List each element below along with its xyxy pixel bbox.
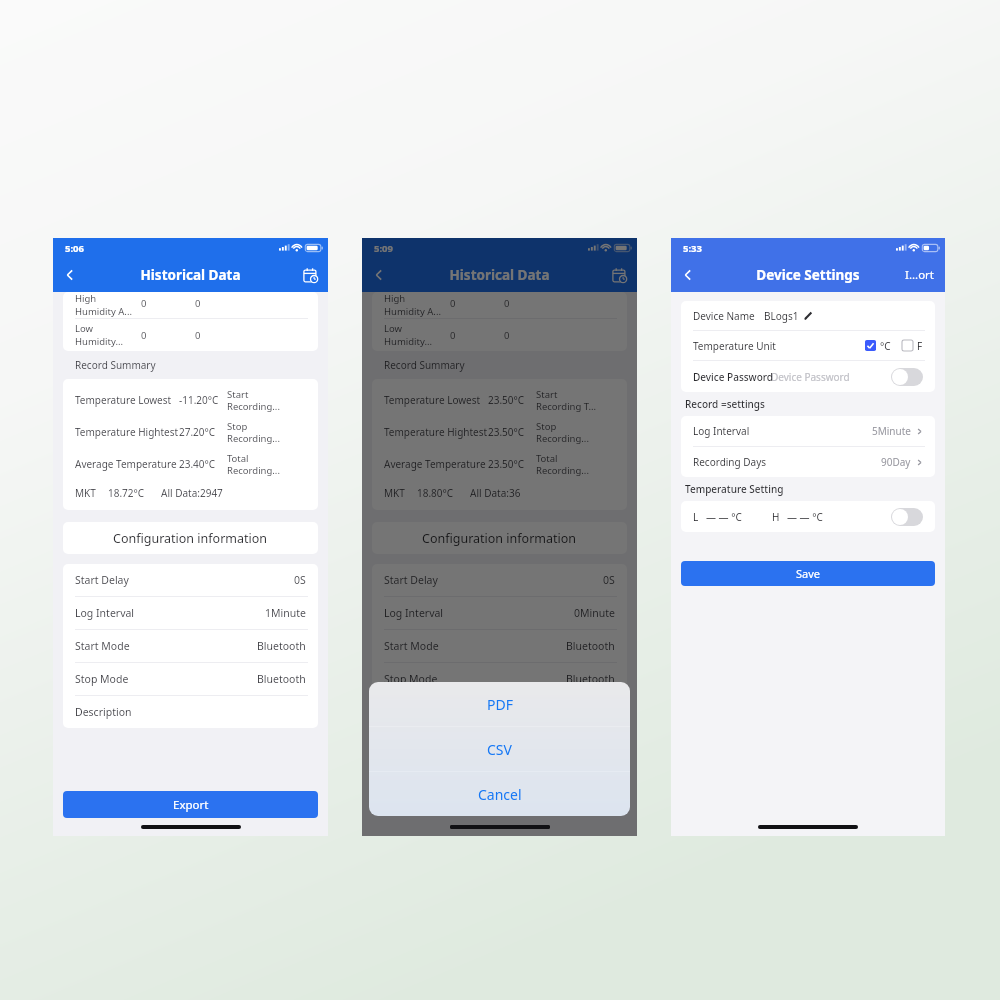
button[interactable]: Stop Mode	[63, 663, 318, 695]
staticText: 0	[450, 329, 456, 342]
staticText: 23.50°C	[488, 425, 536, 439]
staticText: Low	[384, 322, 403, 335]
button[interactable]: Cancel	[369, 772, 630, 816]
staticText: F	[917, 339, 923, 353]
staticText: Device Password	[771, 370, 850, 384]
staticText: Start Delay	[384, 573, 438, 587]
staticText: Low	[75, 322, 94, 335]
staticText: °C	[880, 339, 891, 353]
staticText: Bluetooth	[257, 672, 306, 686]
staticText: 0S	[603, 573, 615, 587]
staticText: All Data:2947	[161, 486, 223, 500]
staticText: Start Recording...	[227, 388, 280, 412]
button[interactable]: Start Delay	[372, 564, 627, 596]
staticText: Average Temperature	[384, 457, 488, 471]
staticText: 0Minute	[574, 606, 615, 620]
staticText: Cancel	[478, 785, 522, 804]
staticText: High	[75, 292, 97, 305]
staticText: Stop Mode	[75, 672, 129, 686]
staticText: Device Password	[693, 370, 774, 384]
button[interactable]: Export	[63, 791, 318, 818]
staticText: 0	[141, 297, 147, 310]
button[interactable]: Back	[57, 262, 83, 288]
staticText: Humidity A...	[384, 305, 441, 318]
staticText: Temperature Lowest	[75, 393, 179, 407]
staticText: Device Name	[693, 309, 755, 323]
staticText: Bluetooth	[566, 672, 615, 686]
staticText: Recording Days	[693, 455, 767, 469]
button[interactable]: Log Interval	[63, 597, 318, 629]
staticText: Stop Mode	[384, 672, 438, 686]
staticText: 0	[195, 297, 201, 310]
staticText: Humidity A...	[75, 305, 132, 318]
button[interactable]: Configuration information	[372, 522, 627, 554]
button[interactable]: PDF	[369, 682, 630, 726]
button[interactable]: Description	[63, 696, 318, 728]
staticText: H	[772, 510, 780, 524]
staticText: Humidity...	[384, 335, 433, 348]
staticText: Description	[75, 705, 132, 719]
staticText: -11.20°C	[179, 393, 227, 407]
staticText: Device Settings	[756, 266, 860, 284]
button[interactable]: CSV	[369, 727, 630, 771]
button[interactable]: I...ort	[903, 263, 937, 287]
button[interactable]: Start Mode	[372, 630, 627, 662]
staticText: Start Mode	[384, 639, 439, 653]
staticText: Start Delay	[75, 573, 129, 587]
staticText: L	[693, 510, 699, 524]
button[interactable]	[865, 340, 876, 351]
staticText: 0	[450, 297, 456, 310]
staticText: 0	[195, 329, 201, 342]
staticText: Temperature Setting	[685, 482, 784, 496]
button[interactable]: Description	[372, 696, 627, 728]
staticText: Temperature Unit	[693, 339, 776, 353]
button[interactable]: Log Interval	[681, 416, 935, 446]
staticText: 5Minute	[872, 424, 911, 438]
button[interactable]: Toggle	[891, 508, 923, 526]
staticText: Average Temperature	[75, 457, 179, 471]
staticText: Record =settings	[685, 397, 765, 411]
staticText: — — °C	[706, 510, 742, 524]
button[interactable]: Pick date	[606, 262, 632, 288]
staticText: Record Summary	[384, 358, 465, 372]
staticText: 5:09	[374, 242, 393, 255]
button[interactable]: Toggle	[891, 368, 923, 386]
staticText: Configuration information	[113, 530, 268, 547]
button[interactable]: Save	[681, 561, 935, 586]
staticText: Temperature Hightest	[384, 425, 488, 439]
staticText: Bluetooth	[566, 639, 615, 653]
button[interactable]: Device Name	[681, 301, 935, 330]
staticText: MKT	[384, 486, 405, 500]
staticText: Bluetooth	[257, 639, 306, 653]
staticText: Log Interval	[384, 606, 444, 620]
staticText: Stop Recording...	[227, 420, 280, 444]
button[interactable]: Recording Days	[681, 447, 935, 477]
button[interactable]: Configuration information	[63, 522, 318, 554]
staticText: Stop Recording...	[536, 420, 589, 444]
button[interactable]: Pick date	[297, 262, 323, 288]
button[interactable]: Stop Mode	[372, 663, 627, 695]
staticText: CSV	[487, 740, 512, 759]
staticText: 18.72°C	[108, 486, 145, 500]
button[interactable]: Start Mode	[63, 630, 318, 662]
staticText: 0	[504, 329, 510, 342]
staticText: Temperature Lowest	[384, 393, 488, 407]
staticText: 18.80°C	[417, 486, 454, 500]
button[interactable]: Start Delay	[63, 564, 318, 596]
staticText: Total Recording...	[227, 452, 280, 476]
staticText: Historical Data	[449, 266, 550, 284]
button[interactable]: Back	[366, 262, 392, 288]
staticText: Log Interval	[75, 606, 135, 620]
staticText: Total Recording...	[536, 452, 589, 476]
staticText: BLogs1	[764, 309, 799, 323]
staticText: Save	[796, 566, 821, 581]
staticText: 0	[504, 297, 510, 310]
staticText: PDF	[487, 695, 513, 714]
staticText: High	[384, 292, 406, 305]
button[interactable]	[902, 340, 913, 351]
staticText: 23.50°C	[488, 457, 536, 471]
button[interactable]: Back	[675, 262, 701, 288]
staticText: — — °C	[787, 510, 823, 524]
button[interactable]: Log Interval	[372, 597, 627, 629]
